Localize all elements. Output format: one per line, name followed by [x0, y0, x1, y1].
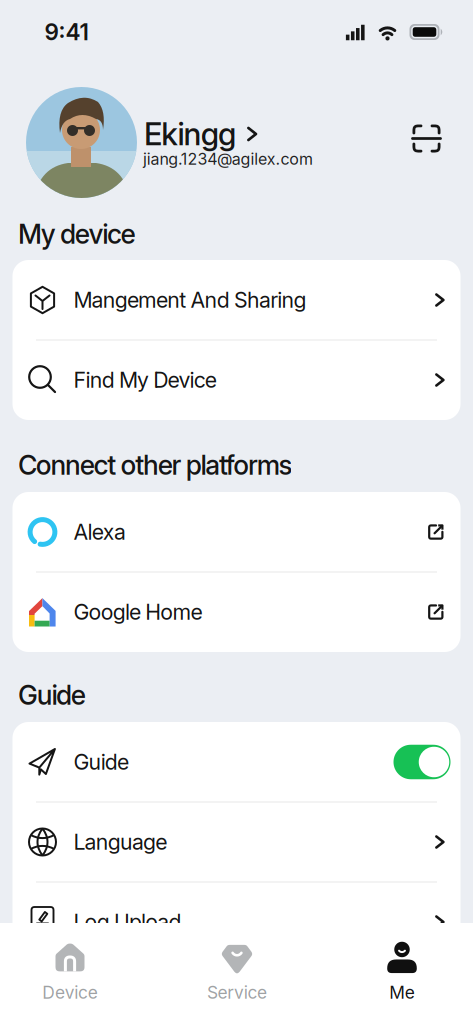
staticText: My device [18, 218, 136, 250]
button[interactable]: Language [12, 802, 460, 882]
button[interactable]: Ekingg [144, 116, 258, 152]
button[interactable]: Guide [393, 745, 450, 779]
button[interactable]: Find My Device [12, 340, 460, 420]
staticText: Me [389, 982, 415, 1003]
staticText: Alexa [73, 519, 126, 545]
staticText: Google Home [73, 599, 202, 625]
button[interactable]: Google Home [12, 572, 460, 652]
staticText: Find My Device [73, 367, 217, 393]
button[interactable]: Service [177, 926, 297, 1018]
staticText: Guide [18, 679, 86, 711]
staticText: 9:41 [44, 19, 88, 45]
button[interactable]: Log Upload [12, 882, 460, 962]
button[interactable]: Mangement And Sharing [12, 260, 460, 340]
staticText: Log Upload [73, 909, 181, 935]
staticText: Connect other platforms [18, 449, 292, 481]
button[interactable]: Me [342, 926, 462, 1018]
staticText: Mangement And Sharing [73, 287, 306, 313]
staticText: Guide [73, 749, 129, 775]
staticText: Language [73, 829, 167, 855]
button[interactable]: Profile photo [26, 87, 137, 198]
staticText: Ekingg [144, 116, 236, 152]
staticText: jiang.1234@agilex.com [143, 150, 313, 168]
button[interactable]: Alexa [12, 492, 460, 572]
staticText: Service [207, 982, 267, 1003]
button[interactable]: Device [10, 926, 130, 1018]
button[interactable]: Scan [412, 124, 440, 152]
staticText: Device [42, 982, 98, 1003]
